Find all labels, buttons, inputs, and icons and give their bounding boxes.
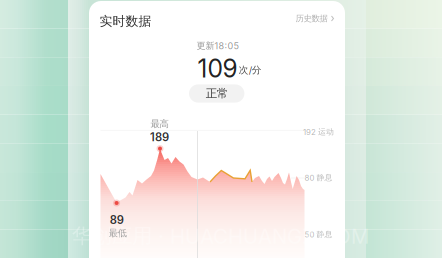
staticText: 80 静息	[304, 173, 332, 183]
button[interactable]: 实时数据	[100, 13, 152, 29]
staticText: 最低	[108, 227, 126, 239]
staticText: 189	[150, 130, 169, 144]
staticText: 华创应用 · HUACHUANGZ.COM	[72, 223, 369, 249]
button[interactable]: 历史数据	[295, 13, 334, 24]
staticText: 192 运动	[303, 127, 334, 137]
staticText: 历史数据	[295, 13, 327, 24]
staticText: 89	[110, 213, 124, 227]
staticText: 最高	[150, 118, 168, 130]
staticText: 次/分	[239, 64, 262, 76]
staticText: 实时数据	[100, 13, 152, 29]
staticText: 50 静息	[304, 229, 332, 239]
staticText: 109	[198, 54, 238, 83]
staticText: 正常	[206, 86, 228, 101]
staticText: 更新18:05	[196, 40, 239, 51]
